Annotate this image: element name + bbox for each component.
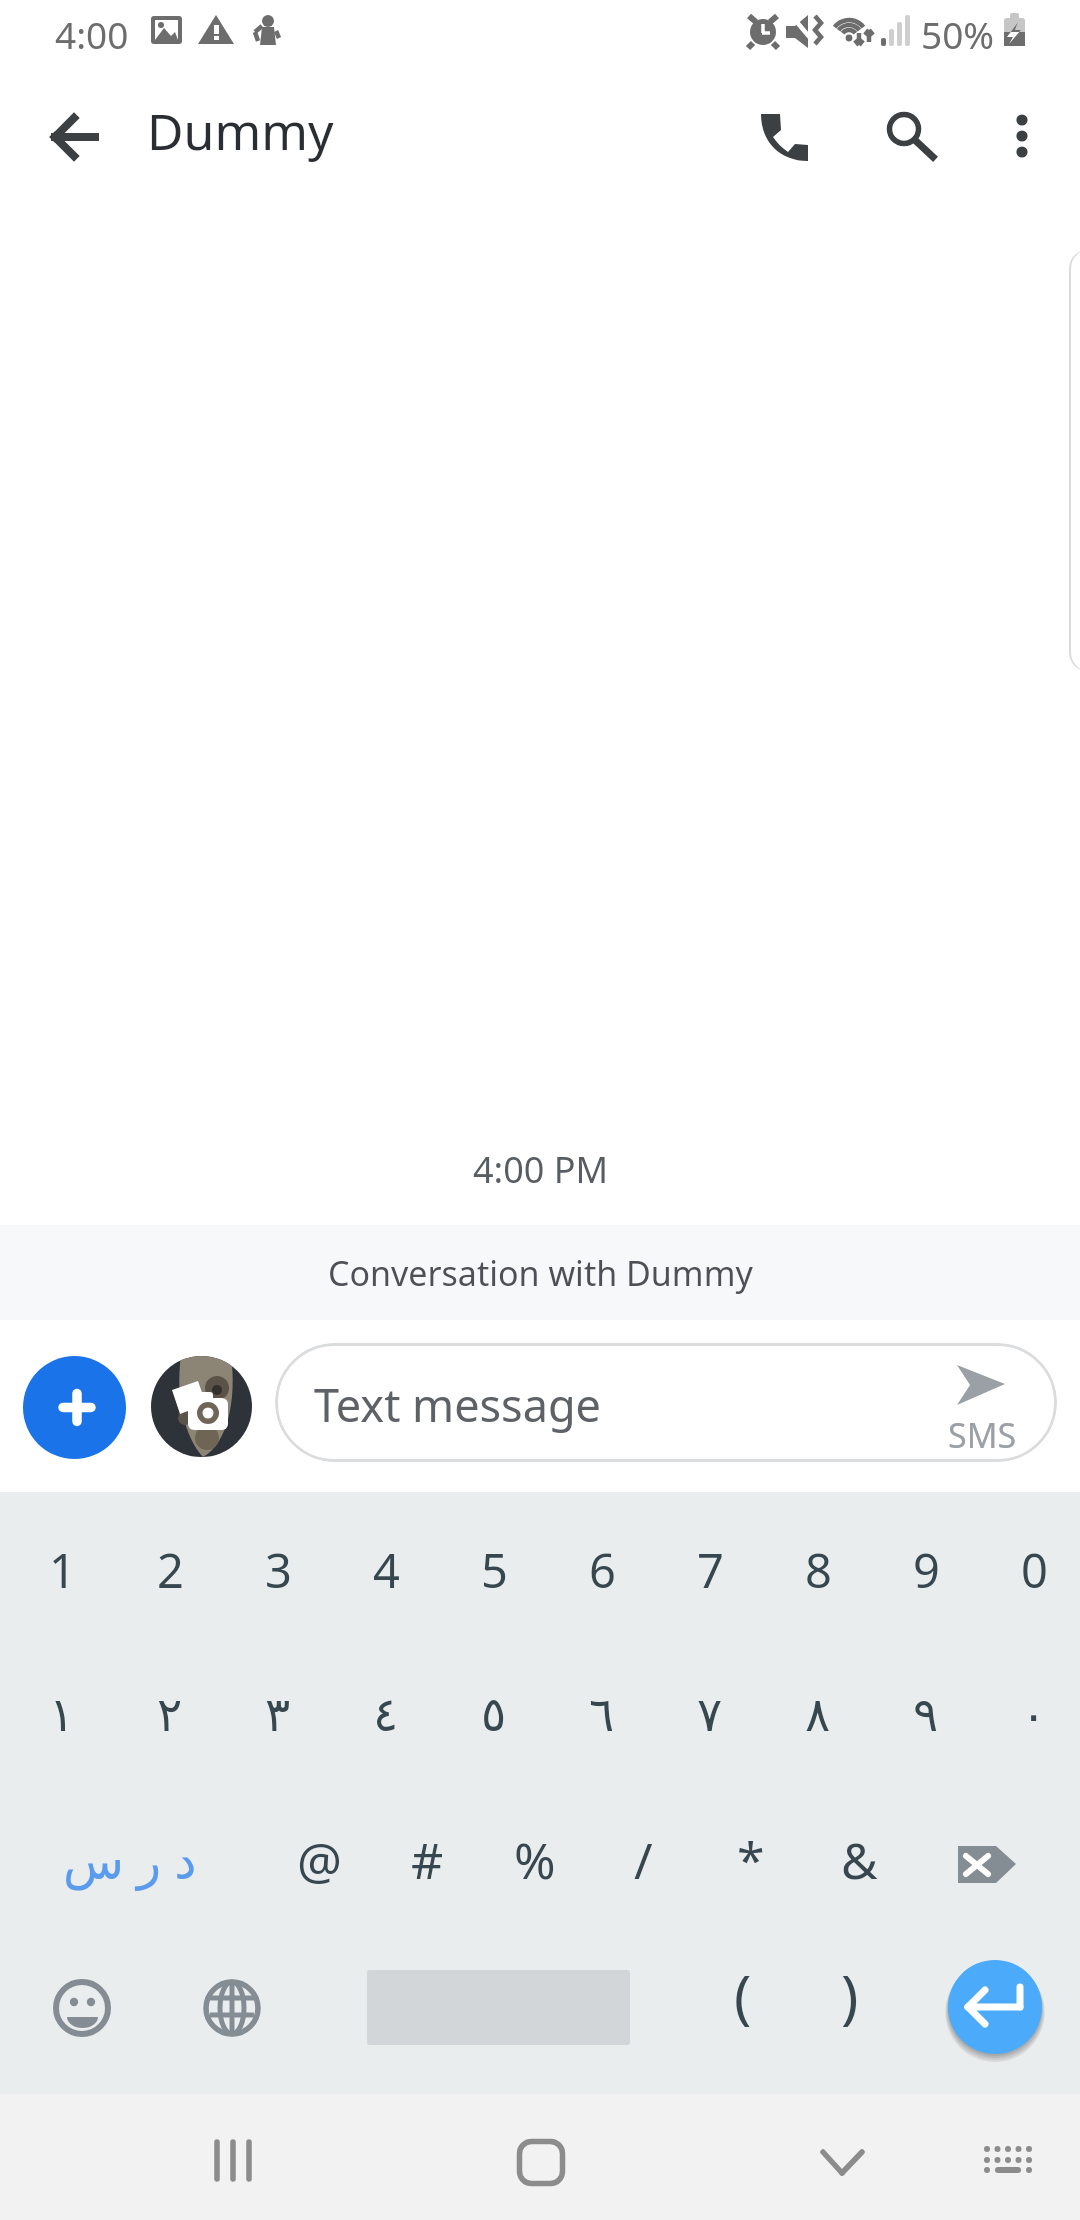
button[interactable]: Text message (275, 1343, 1057, 1462)
staticText: Dummy (147, 97, 334, 165)
button[interactable]: @ (265, 1807, 373, 1913)
staticText: ١ (49, 1687, 75, 1742)
staticText: ٥ (481, 1687, 507, 1742)
button[interactable]: 7 (656, 1517, 764, 1623)
staticText: ٩ (913, 1687, 939, 1742)
button[interactable]: 5 (440, 1517, 548, 1623)
button[interactable]: Home (497, 2120, 577, 2200)
staticText: 9 (913, 1538, 940, 1602)
staticText: 6 (589, 1538, 616, 1602)
button[interactable]: ٢ (116, 1661, 224, 1767)
button[interactable]: ٤ (332, 1661, 440, 1767)
button[interactable]: Enter (948, 1960, 1042, 2054)
staticText: 4 (373, 1538, 400, 1602)
staticText: 3 (265, 1538, 292, 1602)
staticText: 0 (1021, 1538, 1048, 1602)
button[interactable]: Back (29, 92, 119, 182)
button[interactable]: ٦ (548, 1661, 656, 1767)
button[interactable]: ٨ (764, 1661, 872, 1767)
button[interactable]: 0 (980, 1517, 1080, 1623)
staticText: ( (734, 1956, 752, 2035)
button[interactable]: 9 (872, 1517, 980, 1623)
staticText: % (514, 1826, 556, 1894)
staticText: ٨ (805, 1687, 831, 1742)
button[interactable]: * (697, 1807, 805, 1913)
button[interactable]: 4 (332, 1517, 440, 1623)
button[interactable]: ) (797, 1942, 903, 2048)
staticText: / (634, 1826, 653, 1894)
button[interactable]: 6 (548, 1517, 656, 1623)
staticText: د ر س (63, 1826, 197, 1894)
staticText: 1 (49, 1538, 76, 1602)
button[interactable]: Search (863, 92, 953, 182)
staticText: ) (841, 1956, 859, 2035)
button[interactable]: % (481, 1807, 589, 1913)
button[interactable]: Hide keyboard (800, 2120, 880, 2200)
staticText: 2 (157, 1538, 184, 1602)
button[interactable]: Recents (193, 2120, 273, 2200)
button[interactable]: Change language (179, 1957, 285, 2063)
staticText: ٤ (373, 1687, 399, 1742)
staticText: @ (297, 1826, 342, 1894)
staticText: 5 (481, 1538, 508, 1602)
staticText: 50% (921, 9, 995, 59)
staticText: 7 (697, 1538, 724, 1602)
button[interactable]: More options (976, 92, 1066, 182)
button[interactable]: ٧ (656, 1661, 764, 1767)
staticText: ٧ (697, 1687, 723, 1742)
staticText: & (841, 1826, 878, 1894)
staticText: Text message (314, 1374, 601, 1435)
button[interactable]: ٣ (224, 1661, 332, 1767)
staticText: SMS (948, 1412, 1017, 1458)
staticText: 4:00 (55, 9, 129, 59)
button[interactable]: د ر س (22, 1807, 238, 1913)
button[interactable]: 3 (224, 1517, 332, 1623)
staticText: 8 (805, 1538, 832, 1602)
button[interactable]: Call (738, 92, 828, 182)
button[interactable]: & (805, 1807, 913, 1913)
button[interactable]: Backspace (936, 1811, 1046, 1917)
staticText: ٦ (589, 1687, 615, 1742)
button[interactable]: # (373, 1807, 481, 1913)
button[interactable]: ٩ (872, 1661, 980, 1767)
staticText: ٣ (265, 1687, 291, 1742)
button[interactable]: Camera (151, 1356, 252, 1457)
button[interactable]: / (589, 1807, 697, 1913)
staticText: 4:00 PM (473, 1145, 609, 1194)
staticText: * (737, 1826, 765, 1894)
button[interactable]: Emoji (28, 1957, 134, 2063)
button[interactable]: ٥ (440, 1661, 548, 1767)
staticText: ٠ (1021, 1687, 1047, 1742)
staticText: # (411, 1826, 444, 1894)
button[interactable]: ٠ (980, 1661, 1080, 1767)
button[interactable]: Add attachment (23, 1356, 126, 1459)
staticText: Conversation with Dummy (328, 1250, 753, 1296)
button[interactable]: 2 (116, 1517, 224, 1623)
button[interactable]: 1 (8, 1517, 116, 1623)
button[interactable]: 8 (764, 1517, 872, 1623)
button[interactable]: ( (690, 1942, 796, 2048)
staticText: ٢ (157, 1687, 183, 1742)
button[interactable]: ١ (8, 1661, 116, 1767)
button[interactable]: Switch keyboard (960, 2120, 1050, 2210)
